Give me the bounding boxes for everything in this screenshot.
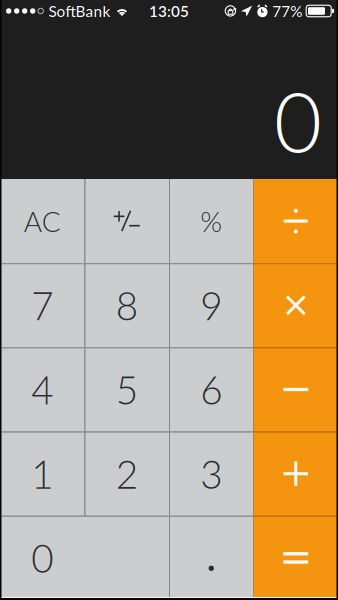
button[interactable]: 8 — [84, 263, 169, 347]
button[interactable]: Decimal point — [169, 516, 253, 600]
staticText: 5 — [116, 366, 138, 413]
staticText: 2 — [116, 450, 138, 497]
button[interactable]: 0 — [0, 516, 169, 600]
staticText: AC — [24, 204, 61, 238]
staticText: 13:05 — [149, 2, 189, 20]
button[interactable]: AC — [0, 179, 84, 263]
button[interactable]: % — [169, 179, 253, 263]
button[interactable]: Equals — [253, 516, 338, 600]
button[interactable]: 9 — [169, 263, 253, 347]
staticText: 1 — [31, 450, 53, 497]
button[interactable]: 3 — [169, 432, 253, 516]
staticText: 3 — [200, 450, 222, 497]
staticText: 77% — [272, 2, 302, 20]
staticText: 6 — [200, 366, 222, 413]
button[interactable]: Divide — [253, 179, 338, 263]
staticText: SoftBank — [48, 2, 110, 20]
staticText: 9 — [200, 282, 222, 328]
staticText: 4 — [31, 366, 53, 413]
button[interactable]: 1 — [0, 432, 84, 516]
button[interactable]: 5 — [84, 347, 169, 432]
button[interactable]: 7 — [0, 263, 84, 347]
button[interactable]: 6 — [169, 347, 253, 432]
button[interactable]: 4 — [0, 347, 84, 432]
staticText: 8 — [116, 282, 138, 328]
staticText: 7 — [31, 282, 53, 328]
button[interactable]: Subtract — [253, 347, 338, 432]
staticText: % — [200, 204, 222, 238]
button[interactable]: Plus minus — [84, 179, 169, 263]
button[interactable]: Multiply — [253, 263, 338, 347]
button[interactable]: Add — [253, 432, 338, 516]
button[interactable]: 2 — [84, 432, 169, 516]
staticText: 0 — [274, 71, 322, 170]
staticText: 0 — [31, 535, 53, 581]
